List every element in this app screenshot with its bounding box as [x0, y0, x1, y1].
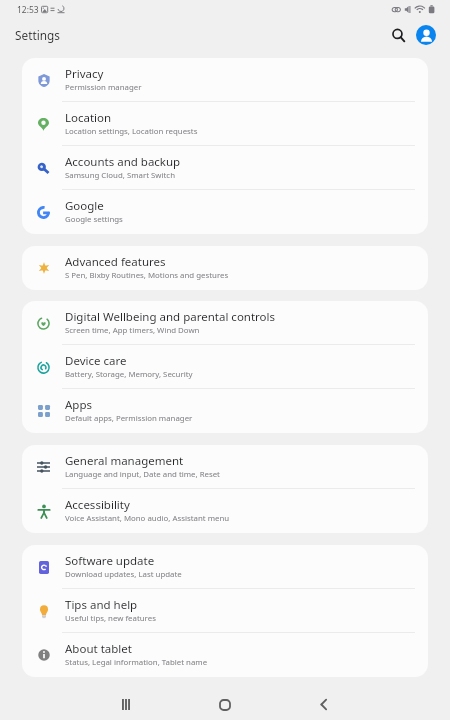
staticText: Privacy: [65, 66, 104, 82]
staticText: Accessibility: [65, 497, 130, 513]
button[interactable]: Accessibility: [22, 489, 428, 533]
staticText: 12:53: [17, 4, 39, 16]
button[interactable]: Apps: [22, 389, 428, 433]
staticText: Location: [65, 110, 112, 126]
staticText: Battery, Storage, Memory, Security: [65, 369, 193, 380]
staticText: About tablet: [65, 641, 132, 657]
staticText: General management: [65, 453, 184, 469]
staticText: Samsung Cloud, Smart Switch: [65, 170, 175, 181]
staticText: Language and input, Date and time, Reset: [65, 469, 220, 480]
staticText: Useful tips, new features: [65, 613, 156, 624]
button[interactable]: Location: [22, 102, 428, 146]
button[interactable]: Privacy: [22, 58, 428, 102]
staticText: Software update: [65, 553, 155, 569]
button[interactable]: Digital Wellbeing and parental controls: [22, 301, 428, 345]
button[interactable]: Advanced features: [22, 246, 428, 290]
staticText: Google settings: [65, 214, 123, 225]
staticText: S Pen, Bixby Routines, Motions and gestu…: [65, 270, 229, 281]
staticText: Default apps, Permission manager: [65, 413, 193, 424]
staticText: Tips and help: [65, 597, 138, 613]
button[interactable]: About tablet: [22, 633, 428, 677]
button[interactable]: Accounts and backup: [22, 146, 428, 190]
staticText: Voice Assistant, Mono audio, Assistant m…: [65, 513, 230, 524]
button[interactable]: Account: [416, 25, 436, 45]
button[interactable]: Search: [385, 22, 411, 48]
staticText: Status, Legal information, Tablet name: [65, 657, 208, 668]
button[interactable]: Software update: [22, 545, 428, 589]
staticText: Google: [65, 198, 104, 214]
staticText: Screen time, App timers, Wind Down: [65, 325, 200, 336]
staticText: Location settings, Location requests: [65, 126, 198, 137]
button[interactable]: Tips and help: [22, 589, 428, 633]
staticText: Device care: [65, 353, 127, 369]
staticText: Accounts and backup: [65, 154, 181, 170]
button[interactable]: Recent apps: [103, 683, 148, 720]
staticText: Download updates, Last update: [65, 569, 182, 580]
button[interactable]: Device care: [22, 345, 428, 389]
button[interactable]: Back: [301, 683, 346, 720]
button[interactable]: Home: [202, 683, 247, 720]
staticText: Permission manager: [65, 82, 142, 93]
button[interactable]: Google: [22, 190, 428, 234]
staticText: Advanced features: [65, 254, 166, 270]
staticText: Settings: [15, 27, 60, 43]
button[interactable]: General management: [22, 445, 428, 489]
staticText: Apps: [65, 397, 93, 413]
staticText: Digital Wellbeing and parental controls: [65, 309, 276, 325]
